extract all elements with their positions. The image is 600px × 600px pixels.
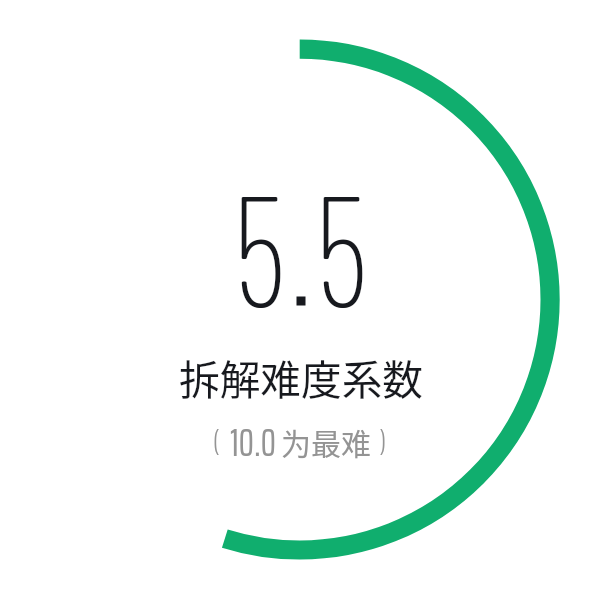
staticText: 5 bbox=[232, 150, 285, 338]
staticText: 5 bbox=[314, 150, 367, 338]
staticText: 10.0 bbox=[230, 413, 276, 473]
staticText: ( bbox=[213, 418, 220, 464]
staticText: 5 bbox=[315, 150, 368, 338]
staticText: 为最难 bbox=[281, 420, 371, 463]
staticText: 5 bbox=[233, 150, 286, 338]
staticText: 拆解难度系数 bbox=[179, 347, 423, 406]
staticText: ) bbox=[380, 418, 387, 464]
button[interactable]: Teardown difficulty score 5.5 out of 10,… bbox=[0, 0, 600, 600]
